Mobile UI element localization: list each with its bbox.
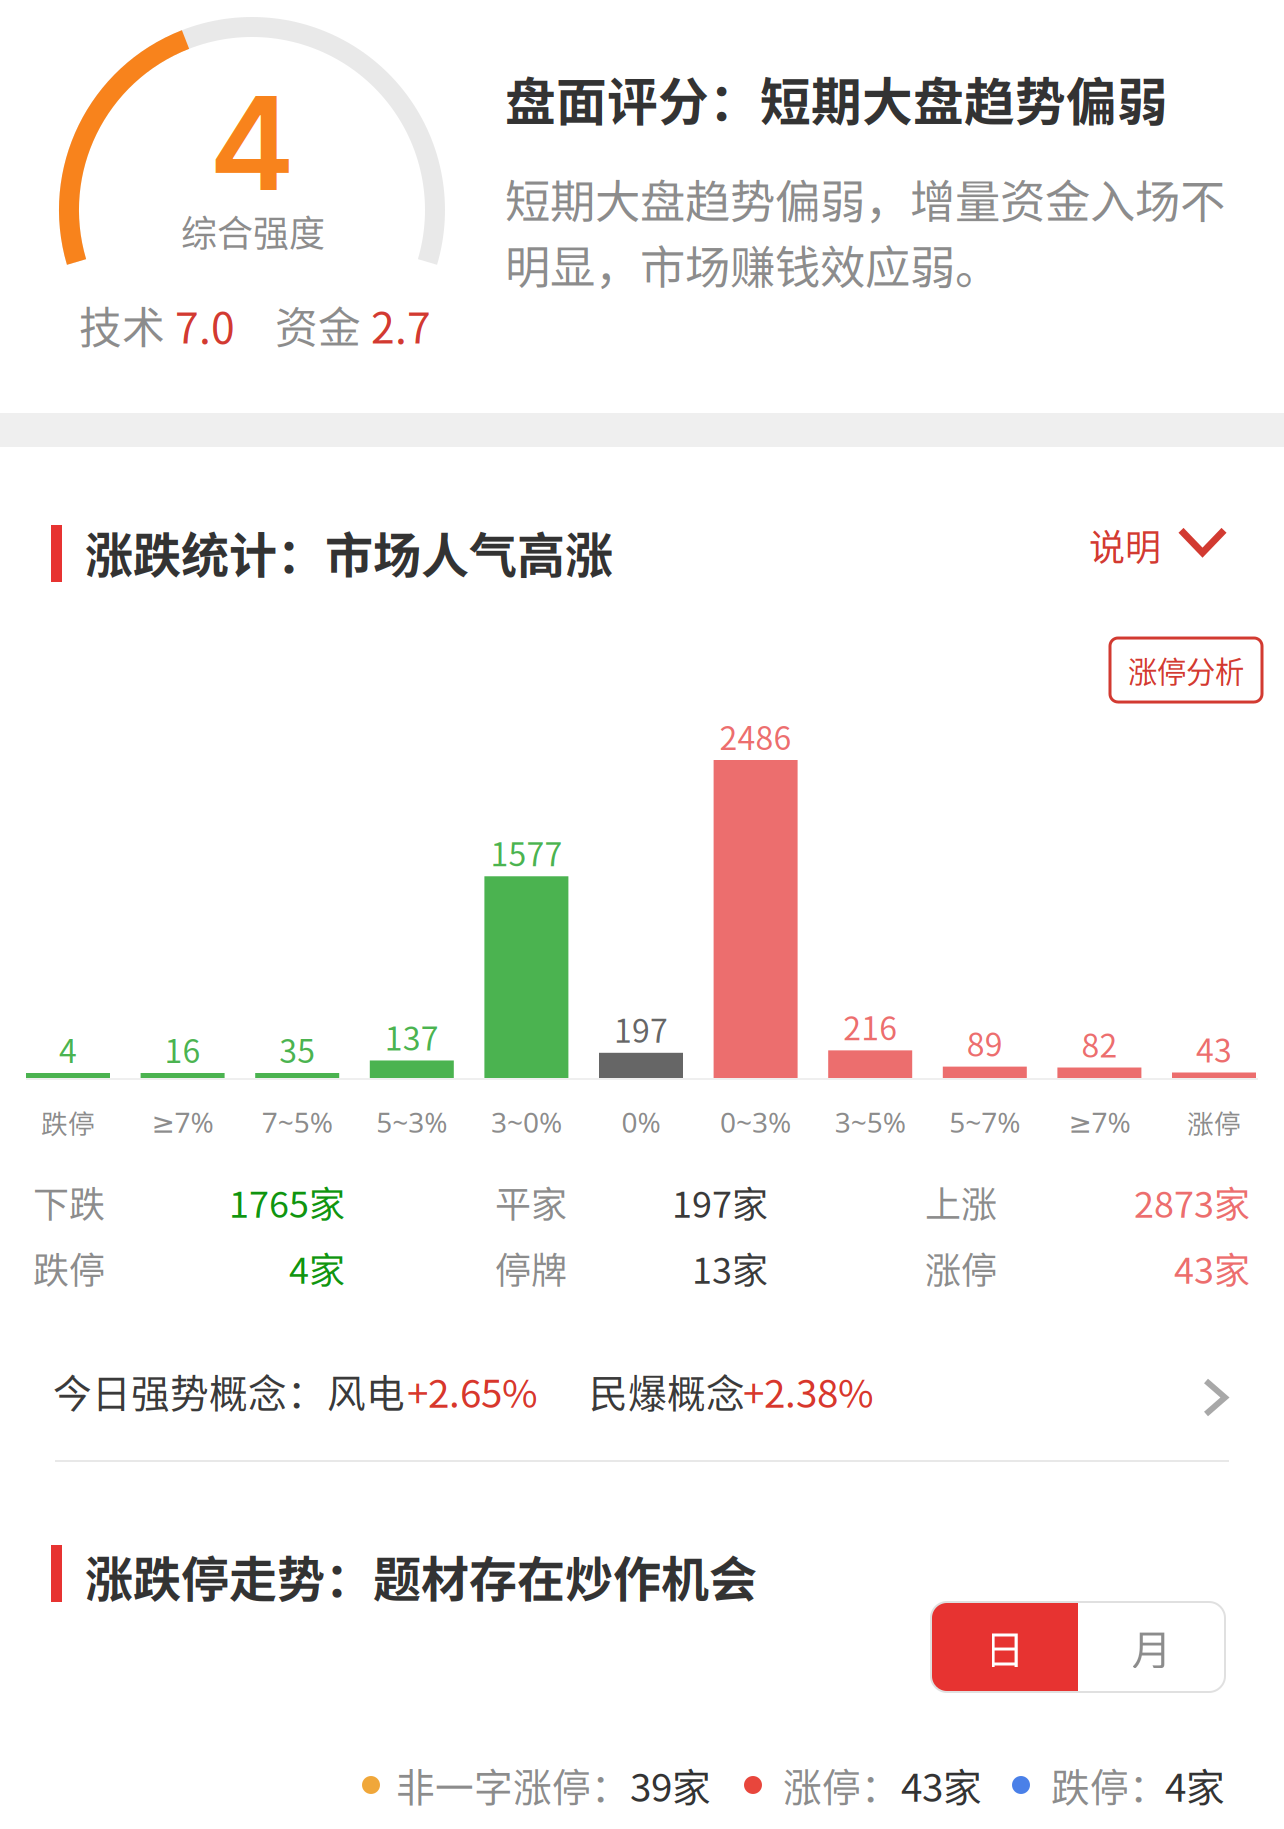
staticText: 涨停 (1187, 1103, 1241, 1141)
staticText: 5~3% (376, 1103, 447, 1141)
button[interactable]: 涨停分析 (1110, 638, 1262, 702)
button[interactable]: 今日强势概念： (53, 1335, 1237, 1435)
staticText: 0% (621, 1103, 660, 1141)
staticText: 16 (165, 1026, 201, 1072)
staticText: 上涨 (925, 1176, 997, 1228)
staticText: 137 (385, 1013, 439, 1060)
staticText: 民爆概念 (589, 1363, 745, 1419)
staticText: 涨停分析 (1128, 649, 1244, 691)
staticText: 1577 (490, 829, 562, 875)
staticText: 非一字涨停： (396, 1757, 630, 1813)
staticText: 82 (1081, 1020, 1117, 1067)
staticText: 停牌 (495, 1242, 567, 1294)
staticText: 2.7 (371, 294, 431, 356)
staticText: 4 (209, 65, 295, 221)
staticText: 短期大盘趋势偏弱，增量资金入场不明显，市场赚钱效应弱。 (505, 166, 1225, 297)
staticText: 2486 (720, 713, 792, 759)
staticText: 涨跌统计：市场人气高涨 (85, 517, 613, 586)
staticText: 涨停 (925, 1242, 997, 1294)
staticText: 跌停 (33, 1242, 105, 1294)
staticText: 综合强度 (181, 205, 325, 257)
staticText: 跌停 (41, 1103, 95, 1141)
staticText: 涨跌停走势：题材存在炒作机会 (85, 1541, 757, 1610)
staticText: 197 (614, 1006, 668, 1052)
button[interactable]: 日 (931, 1602, 1078, 1692)
staticText: 5~7% (949, 1103, 1020, 1141)
staticText: 89 (967, 1019, 1003, 1066)
staticText: 4 (59, 1026, 77, 1072)
staticText: +2.65% (407, 1363, 538, 1419)
staticText: 日 (984, 1618, 1024, 1676)
staticText: 0~3% (720, 1103, 791, 1141)
staticText: 43家 (901, 1757, 982, 1813)
staticText: 1765家 (229, 1176, 345, 1228)
staticText: ≥7% (1068, 1103, 1130, 1141)
staticText: 2873家 (1134, 1176, 1250, 1228)
staticText: 7.0 (175, 294, 235, 356)
staticText: 3~0% (491, 1103, 562, 1141)
staticText: ≥7% (152, 1103, 214, 1141)
staticText: 43 (1196, 1025, 1232, 1072)
staticText: 4家 (289, 1242, 345, 1294)
staticText: 技术 (79, 294, 175, 356)
staticText: 39家 (630, 1757, 711, 1813)
staticText: 13家 (692, 1242, 768, 1294)
staticText: 跌停： (1051, 1757, 1168, 1813)
staticText: 月 (1131, 1618, 1171, 1676)
staticText: 资金 (235, 294, 371, 356)
staticText: +2.38% (743, 1363, 874, 1419)
staticText: 说明 (1089, 519, 1161, 571)
staticText: 7~5% (262, 1103, 333, 1141)
staticText: 平家 (495, 1176, 567, 1228)
staticText: 风电 (327, 1363, 405, 1419)
staticText: 今日强势概念： (53, 1363, 326, 1419)
staticText: 3~5% (835, 1103, 906, 1141)
staticText: 盘面评分：短期大盘趋势偏弱 (505, 62, 1168, 135)
staticText: 43家 (1174, 1242, 1250, 1294)
staticText: 涨停： (783, 1757, 900, 1813)
staticText: 35 (279, 1026, 315, 1072)
staticText: 216 (843, 1003, 897, 1049)
staticText: 4家 (1165, 1757, 1225, 1813)
button[interactable]: 月 (1078, 1602, 1225, 1692)
staticText: 197家 (672, 1176, 768, 1228)
staticText: 下跌 (33, 1176, 105, 1228)
button[interactable]: 说明 (1089, 512, 1249, 578)
